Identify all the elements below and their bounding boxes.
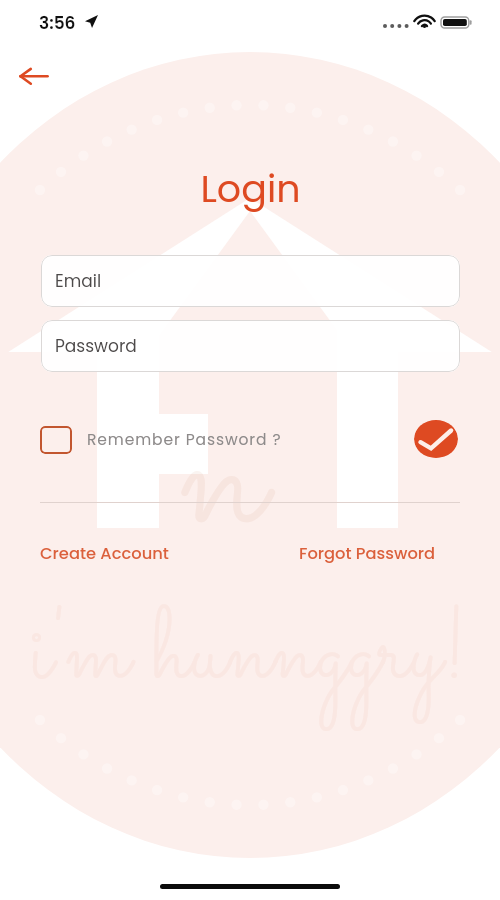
staticText: Forgot Password: [299, 542, 436, 565]
button[interactable]: Forgot Password: [299, 542, 436, 565]
staticText: Create Account: [40, 542, 169, 565]
button[interactable]: Password: [41, 320, 460, 372]
staticText: Email: [55, 269, 102, 293]
staticText: 3:56: [39, 11, 76, 35]
button[interactable]: Create Account: [40, 542, 169, 565]
button[interactable]: Email: [41, 255, 460, 307]
button[interactable]: Remember Password ?: [40, 426, 282, 454]
button[interactable]: Submit: [414, 420, 458, 458]
staticText: Password: [55, 334, 137, 358]
staticText: Remember Password ?: [87, 429, 282, 451]
staticText: Login: [200, 162, 301, 215]
staticText: n: [178, 340, 265, 625]
button[interactable]: Back: [2, 54, 46, 98]
